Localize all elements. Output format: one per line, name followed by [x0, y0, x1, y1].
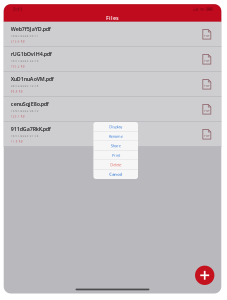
button[interactable]: Delete	[93, 160, 138, 169]
staticText: PDF	[204, 34, 209, 37]
staticText: 77.8 KB	[11, 140, 23, 143]
staticText: 16/11/2023 22:16	[11, 59, 39, 63]
staticText: rUG1bOvlH4.pdf	[11, 50, 52, 57]
staticText: 88.4 KB	[11, 90, 23, 93]
staticText: cenuSqjE8o.pdf	[11, 100, 49, 107]
button[interactable]: Display	[93, 122, 138, 131]
staticText: PDF	[204, 59, 209, 62]
button[interactable]: Add file	[195, 266, 214, 285]
staticText: 15/01/2022 04:10	[11, 109, 39, 113]
staticText: 04/12/2020 10:18	[11, 84, 39, 88]
button[interactable]: Share	[93, 141, 138, 150]
staticText: 16/11/2023 01:14	[11, 134, 39, 138]
staticText: 16/07/2024 09:11	[11, 34, 39, 38]
button[interactable]: Print	[93, 150, 138, 160]
button[interactable]: Rename	[93, 131, 138, 141]
button[interactable]: rUG1bOvlH4.pdf	[4, 47, 221, 72]
staticText: Share	[111, 143, 121, 148]
staticText: PDF	[204, 84, 209, 87]
staticText: 213.6 KB	[11, 40, 25, 43]
staticText: 9:41	[13, 6, 23, 13]
staticText: Delete	[110, 162, 121, 167]
button[interactable]: 911dGa7RkK.pdf	[4, 122, 221, 147]
button[interactable]: cenuSqjE8o.pdf	[4, 97, 221, 122]
staticText: 911dGa7RkK.pdf	[11, 125, 51, 132]
staticText: Display	[109, 124, 122, 129]
button[interactable]: XuD1nuAoVM.pdf	[4, 72, 221, 97]
staticText: Rename	[109, 134, 123, 139]
staticText: PDF	[204, 109, 209, 112]
staticText: Web7f5JaYD.pdf	[11, 25, 51, 32]
staticText: Cancel	[109, 172, 122, 177]
staticText: PDF	[204, 134, 209, 137]
staticText: Print	[112, 153, 120, 158]
staticText: Files	[106, 14, 119, 22]
staticText: XuD1nuAoVM.pdf	[11, 75, 54, 82]
button[interactable]: Cancel	[93, 169, 138, 179]
button[interactable]: Web7f5JaYD.pdf	[4, 22, 221, 47]
staticText: 105.2 KB	[11, 65, 25, 68]
staticText: 120.1 KB	[11, 115, 25, 118]
